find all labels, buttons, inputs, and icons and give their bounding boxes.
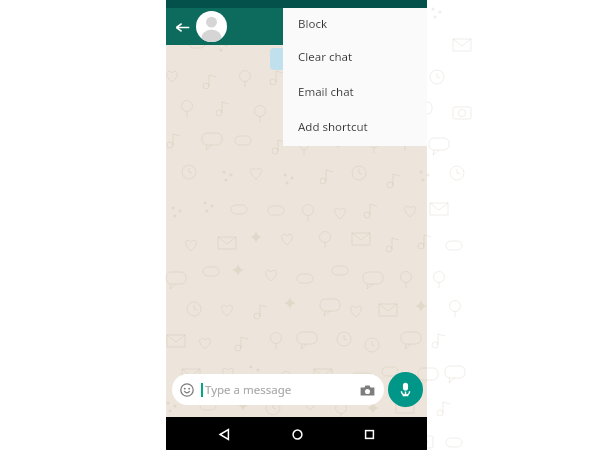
- button[interactable]: Home: [282, 419, 312, 449]
- button[interactable]: Record voice message: [388, 372, 423, 407]
- staticText: Clear chat: [298, 49, 353, 65]
- button[interactable]: Clear chat: [283, 39, 427, 74]
- button[interactable]: Back: [209, 419, 239, 449]
- staticText: Type a message: [205, 382, 292, 398]
- button[interactable]: Contact avatar: [196, 11, 227, 42]
- button[interactable]: Camera: [358, 381, 376, 399]
- staticText: Block: [298, 16, 328, 32]
- button[interactable]: Type a message: [172, 374, 384, 405]
- button[interactable]: Back: [170, 15, 194, 39]
- staticText: Email chat: [298, 84, 354, 100]
- button[interactable]: Block: [283, 8, 427, 39]
- button[interactable]: Recents: [354, 419, 384, 449]
- button[interactable]: Email chat: [283, 74, 427, 109]
- staticText: Add shortcut: [298, 119, 368, 135]
- button[interactable]: Add shortcut: [283, 109, 427, 144]
